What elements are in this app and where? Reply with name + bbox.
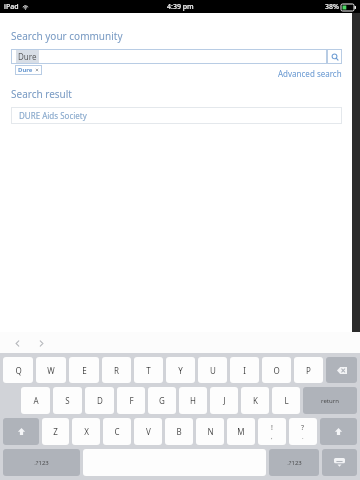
staticText: T — [146, 365, 151, 376]
button[interactable]: A — [21, 387, 50, 414]
staticText: .?123 — [34, 459, 49, 467]
staticText: Q — [15, 365, 22, 376]
button[interactable]: Search — [327, 49, 342, 64]
button[interactable]: ! — [258, 418, 286, 445]
button[interactable]: Shift — [3, 418, 39, 445]
button[interactable]: Dure — [18, 66, 39, 74]
staticText: G — [159, 395, 165, 406]
button[interactable]: ? — [289, 418, 317, 445]
staticText: ! — [271, 423, 273, 433]
button[interactable]: P — [294, 357, 323, 383]
staticText: ? — [301, 423, 305, 433]
staticText: , — [271, 433, 273, 441]
staticText: F — [129, 395, 134, 406]
button[interactable]: DURE Aids Society — [11, 107, 342, 124]
button[interactable]: F — [117, 387, 145, 414]
button[interactable]: D — [85, 387, 114, 414]
button[interactable]: R — [102, 357, 131, 383]
button[interactable]: C — [103, 418, 131, 445]
staticText: H — [190, 395, 196, 406]
staticText: B — [176, 426, 182, 437]
button[interactable]: S — [53, 387, 82, 414]
button[interactable]: U — [198, 357, 227, 383]
staticText: Y — [178, 365, 183, 376]
button[interactable]: K — [241, 387, 269, 414]
button[interactable]: Y — [166, 357, 195, 383]
staticText: N — [207, 426, 214, 437]
staticText: Search your community — [11, 29, 123, 43]
button[interactable]: .?123 — [3, 449, 80, 476]
staticText: E — [82, 365, 87, 376]
staticText: Search result — [11, 87, 72, 101]
staticText: D — [97, 395, 103, 406]
staticText: X — [84, 426, 89, 437]
staticText: I — [243, 365, 246, 376]
staticText: W — [47, 365, 55, 376]
button[interactable]: J — [210, 387, 238, 414]
button[interactable]: Dure — [11, 49, 327, 64]
staticText: return — [321, 397, 339, 405]
staticText: Z — [53, 426, 58, 437]
button[interactable]: H — [179, 387, 207, 414]
staticText: 38% — [325, 2, 339, 12]
staticText: P — [306, 365, 311, 376]
button[interactable]: W — [36, 357, 66, 383]
staticText: 4:39 pm — [167, 2, 194, 12]
button[interactable]: B — [165, 418, 193, 445]
staticText: iPad — [4, 2, 19, 12]
button[interactable]: Next field — [32, 334, 50, 352]
button[interactable]: E — [69, 357, 99, 383]
button[interactable]: Previous field — [8, 334, 26, 352]
staticText: K — [253, 395, 258, 406]
staticText: U — [210, 365, 216, 376]
button[interactable]: O — [262, 357, 291, 383]
staticText: DURE Aids Society — [19, 110, 87, 121]
staticText: Advanced search — [278, 68, 342, 79]
button[interactable]: Shift — [320, 418, 357, 445]
staticText: J — [223, 395, 226, 406]
button[interactable]: L — [272, 387, 300, 414]
staticText: O — [273, 365, 280, 376]
button[interactable]: Q — [3, 357, 33, 383]
button[interactable]: return — [303, 387, 357, 414]
button[interactable]: X — [72, 418, 100, 445]
button[interactable]: Z — [42, 418, 69, 445]
button[interactable]: Backspace — [326, 357, 357, 383]
button[interactable]: I — [230, 357, 259, 383]
button[interactable]: Advanced search — [278, 68, 342, 79]
staticText: .?123 — [287, 459, 302, 467]
staticText: R — [114, 365, 119, 376]
staticText: A — [33, 395, 39, 406]
staticText: Dure — [18, 66, 33, 74]
button[interactable]: Hide keyboard — [322, 449, 357, 476]
staticText: . — [302, 433, 304, 441]
staticText: L — [284, 395, 289, 406]
staticText: S — [65, 395, 70, 406]
staticText: M — [237, 426, 245, 437]
button[interactable]: T — [134, 357, 163, 383]
staticText: Dure — [18, 51, 37, 62]
button[interactable]: M — [227, 418, 255, 445]
button[interactable]: N — [196, 418, 224, 445]
staticText: V — [146, 426, 151, 437]
button[interactable]: .?123 — [269, 449, 319, 476]
staticText: C — [114, 426, 120, 437]
button[interactable]: V — [134, 418, 162, 445]
button[interactable]: G — [148, 387, 176, 414]
